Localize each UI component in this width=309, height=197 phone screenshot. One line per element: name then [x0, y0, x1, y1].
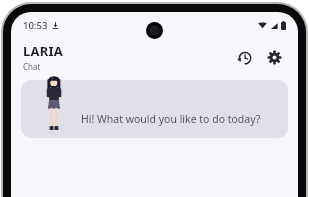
button[interactable]: Hi! What would you like to do today?: [21, 80, 288, 138]
button[interactable]: Settings: [260, 43, 288, 71]
button[interactable]: History: [230, 43, 258, 71]
staticText: Chat: [23, 61, 41, 72]
staticText: Hi! What would you like to do today?: [81, 112, 261, 126]
staticText: LARIA: [23, 42, 63, 60]
staticText: 10:53: [23, 19, 48, 32]
